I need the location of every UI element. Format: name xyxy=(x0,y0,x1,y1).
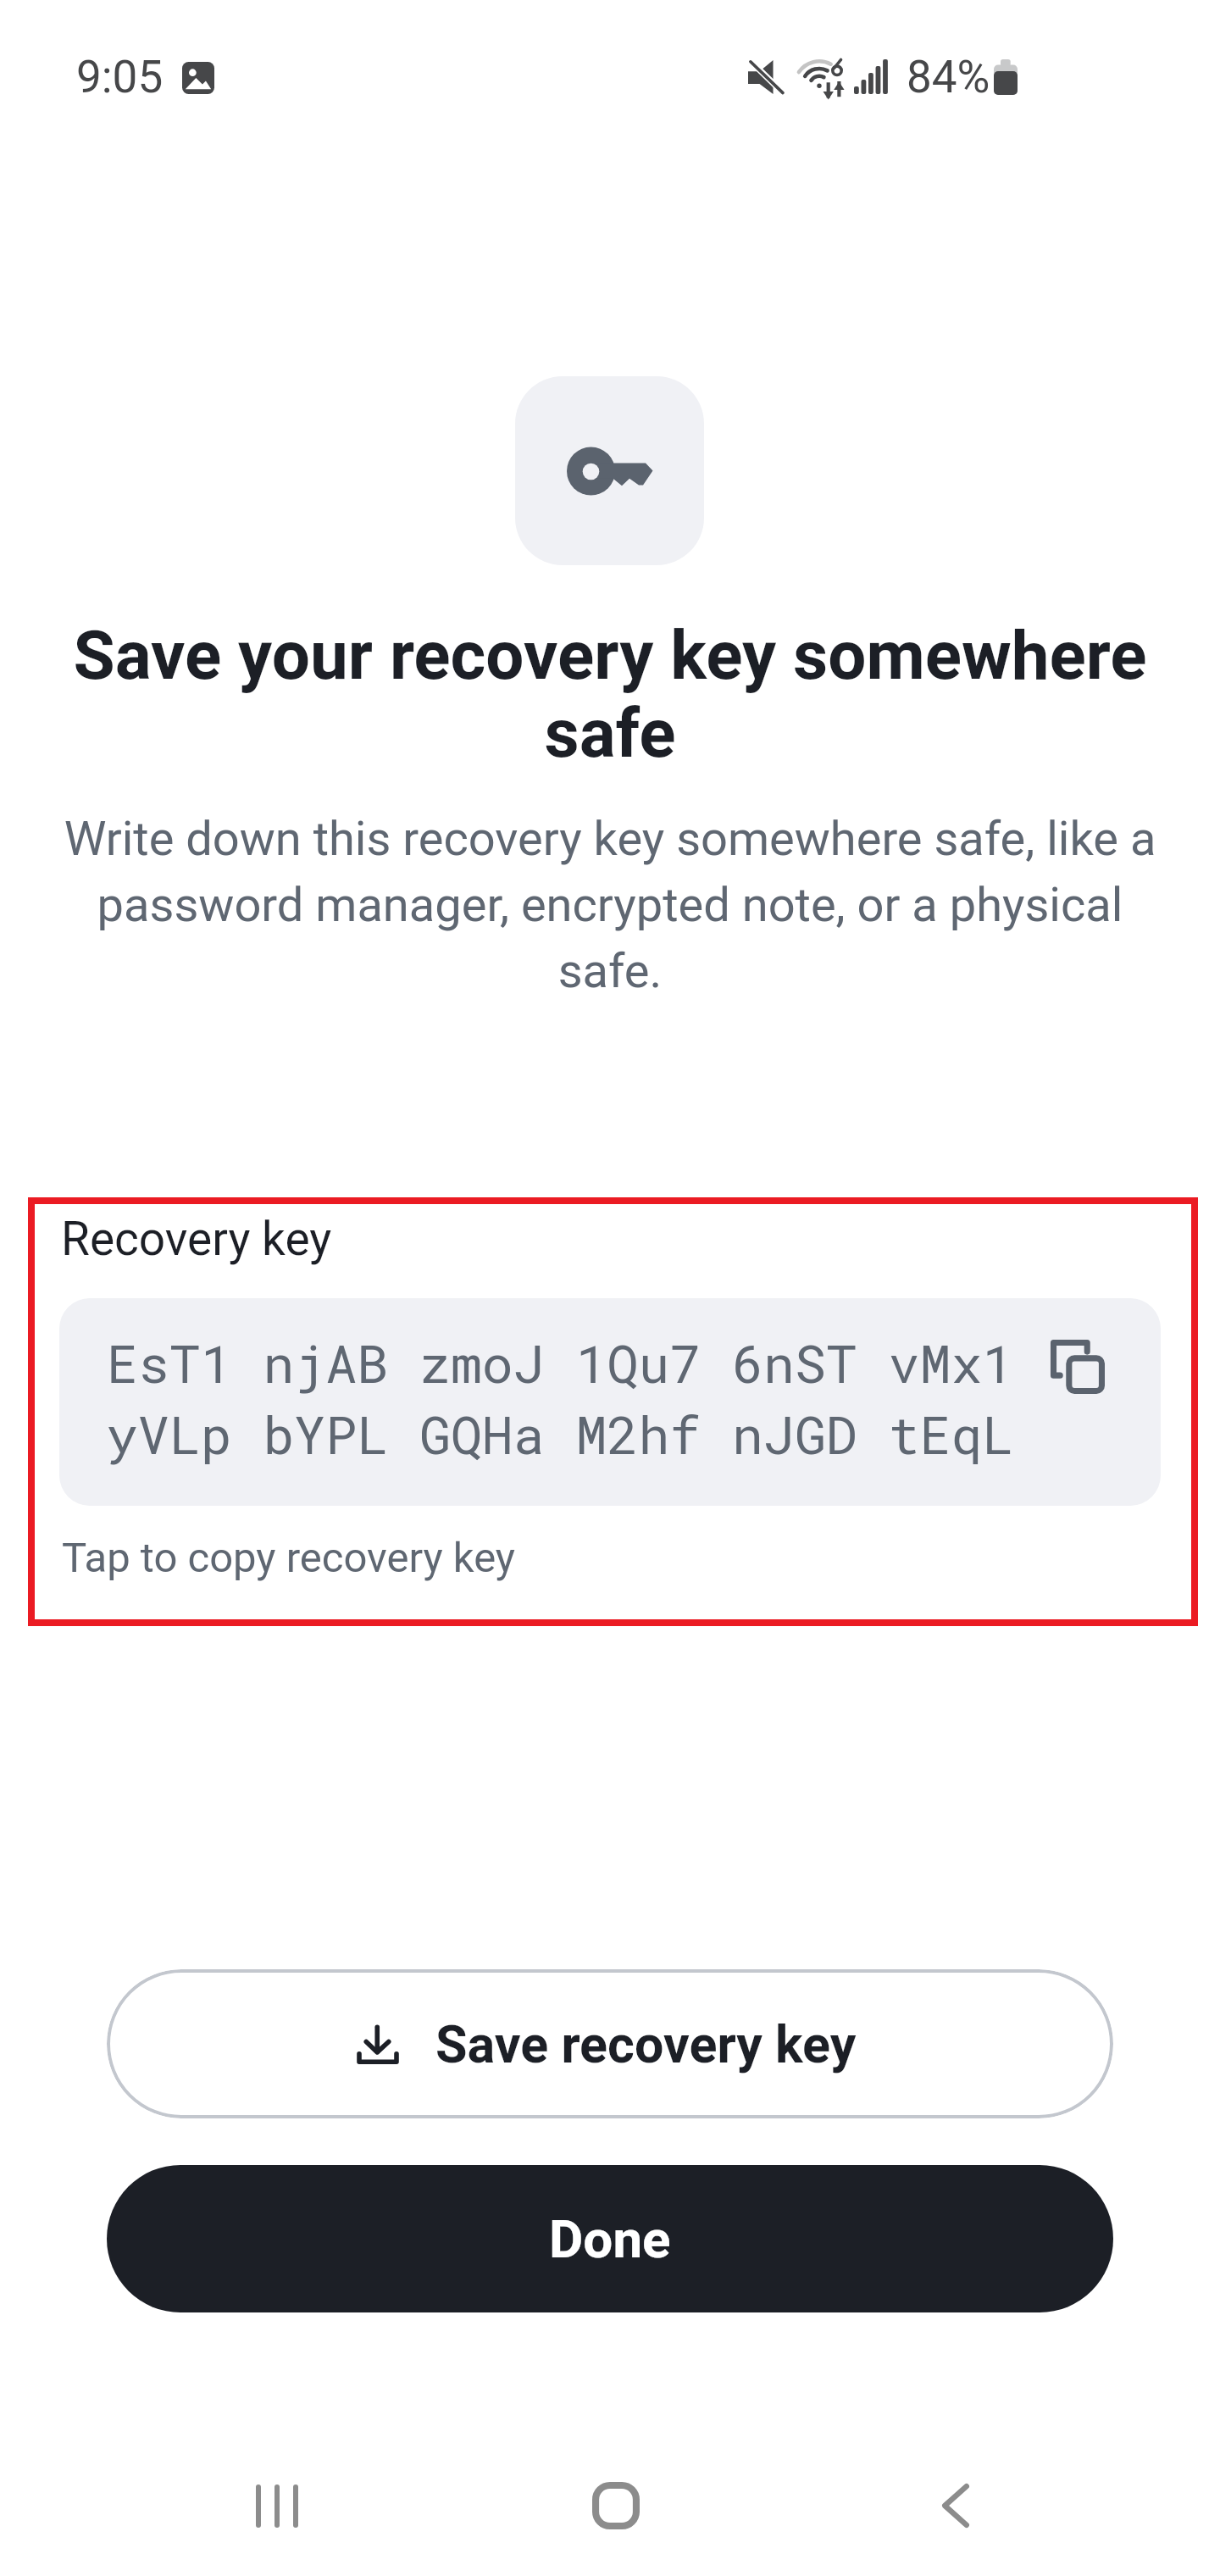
button[interactable]: Done xyxy=(107,2165,1113,2312)
staticText: 9:05 xyxy=(76,51,164,103)
staticText: 84% xyxy=(907,51,990,103)
staticText: Recovery key xyxy=(61,1212,332,1266)
button[interactable]: Recovery key xyxy=(28,1197,1198,1626)
button[interactable]: Recents xyxy=(226,2455,328,2557)
button[interactable]: Save recovery key xyxy=(107,1969,1113,2118)
staticText: Save your recovery key somewhere safe xyxy=(56,616,1164,773)
button[interactable]: Home xyxy=(565,2455,667,2557)
staticText: yVLp bYPL GQHa M2hf nJGD tEqL xyxy=(107,1400,1014,1468)
staticText: Write down this recovery key somewhere s… xyxy=(56,811,1164,998)
staticText: EsT1 njAB zmoJ 1Qu7 6nST vMx1 xyxy=(107,1329,1014,1397)
staticText: Save recovery key xyxy=(435,2014,857,2074)
staticText: Done xyxy=(549,2208,671,2270)
staticText: Tap to copy recovery key xyxy=(62,1534,516,1582)
button[interactable]: Back xyxy=(905,2455,1006,2557)
button[interactable]: Copy recovery key xyxy=(1051,1340,1105,1394)
